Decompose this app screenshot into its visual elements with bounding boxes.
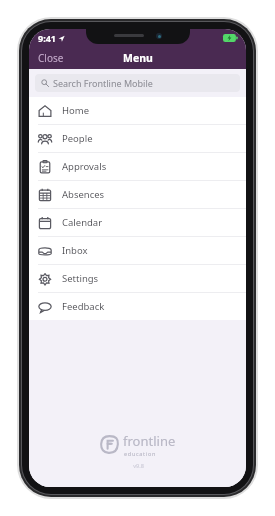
staticText: Menu: [123, 51, 153, 65]
button[interactable]: Calendar: [29, 209, 246, 236]
staticText: 9:41: [38, 32, 56, 44]
button[interactable]: Home: [29, 97, 246, 124]
staticText: Feedback: [62, 300, 105, 313]
staticText: frontline: [123, 432, 176, 450]
staticText: Home: [62, 104, 90, 117]
button[interactable]: People: [29, 125, 246, 152]
staticText: Absences: [62, 188, 105, 201]
staticText: Settings: [62, 272, 99, 285]
staticText: Approvals: [62, 160, 107, 173]
staticText: Close: [38, 51, 64, 65]
staticText: Inbox: [62, 244, 88, 257]
button[interactable]: Inbox: [29, 237, 246, 264]
button[interactable]: Feedback: [29, 293, 246, 320]
staticText: education: [124, 450, 157, 457]
button[interactable]: Settings: [29, 265, 246, 292]
staticText: v9.8: [133, 462, 144, 469]
staticText: People: [62, 132, 93, 145]
button[interactable]: Close: [29, 48, 73, 68]
button[interactable]: Absences: [29, 181, 246, 208]
button[interactable]: Approvals: [29, 153, 246, 180]
button[interactable]: Search Frontline Mobile: [35, 74, 240, 92]
staticText: Calendar: [62, 216, 103, 229]
staticText: Search Frontline Mobile: [53, 77, 153, 89]
